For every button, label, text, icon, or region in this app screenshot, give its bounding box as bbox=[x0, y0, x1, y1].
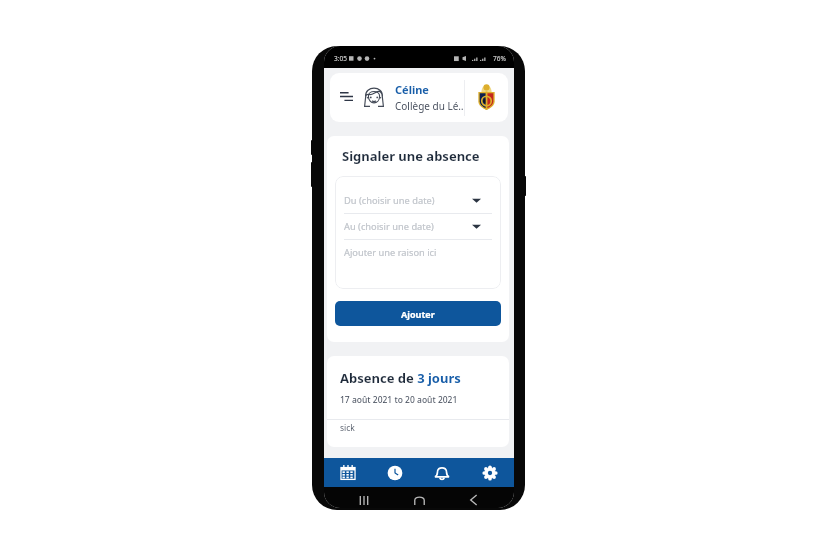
staticText: Absence de 3 jours bbox=[340, 369, 461, 387]
button[interactable]: Ajouter bbox=[335, 301, 501, 326]
staticText: 17 août 2021 to 20 août 2021 bbox=[340, 394, 458, 406]
button[interactable]: Settings bbox=[466, 458, 514, 487]
button[interactable]: Calendar bbox=[324, 458, 371, 487]
button[interactable]: Absence de 3 jours bbox=[327, 356, 509, 447]
button[interactable]: Back bbox=[467, 494, 479, 506]
staticText: Du (choisir une date) bbox=[344, 194, 472, 207]
button[interactable]: Menu bbox=[335, 89, 353, 107]
button[interactable]: History bbox=[371, 458, 418, 487]
staticText: Collège du Lé… bbox=[395, 99, 464, 113]
staticText: Signaler une absence bbox=[342, 147, 480, 165]
staticText: Au (choisir une date) bbox=[344, 220, 472, 233]
staticText: Ajouter bbox=[401, 308, 435, 320]
staticText: sick bbox=[340, 422, 355, 434]
staticText: 76% bbox=[493, 54, 506, 63]
button[interactable]: Au (choisir une date) bbox=[344, 214, 492, 240]
button[interactable]: Recents bbox=[358, 494, 370, 506]
staticText: 3:05 bbox=[334, 54, 347, 63]
button[interactable]: Du (choisir une date) bbox=[344, 188, 492, 214]
staticText: Ajouter une raison ici bbox=[344, 246, 437, 259]
button[interactable]: Home bbox=[412, 493, 426, 507]
button[interactable]: Notifications bbox=[418, 458, 466, 487]
staticText: Céline bbox=[395, 82, 429, 97]
